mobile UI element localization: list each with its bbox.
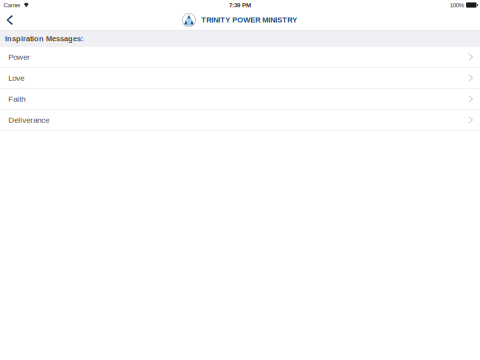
staticText: Carrier [3, 2, 20, 8]
button[interactable]: Faith [0, 89, 480, 110]
button[interactable]: Deliverance [0, 110, 480, 131]
staticText: 100% [450, 2, 464, 8]
staticText: 7:39 PM [229, 2, 251, 8]
button[interactable]: Back [0, 10, 26, 30]
staticText: Power [8, 52, 30, 61]
staticText: Inspiration Messages: [5, 35, 83, 43]
staticText: Faith [8, 94, 25, 103]
staticText: Love [8, 73, 24, 82]
button[interactable]: Love [0, 68, 480, 89]
staticText: TRINITY POWER MINISTRY [201, 16, 297, 24]
button[interactable]: Power [0, 47, 480, 68]
staticText: Deliverance [8, 115, 49, 124]
